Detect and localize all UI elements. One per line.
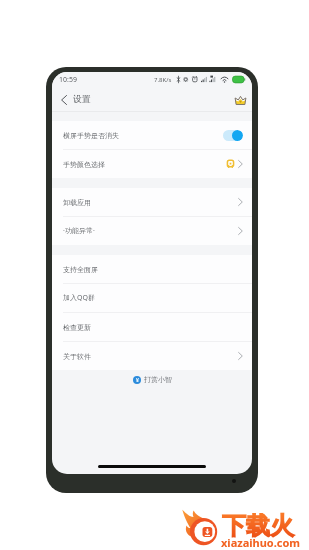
staticText: 7.8K/s (154, 76, 172, 84)
staticText: 支持全面屏 (63, 265, 98, 274)
button[interactable]: 手势颜色选择 (52, 150, 252, 178)
staticText: 设置 (73, 94, 91, 105)
button[interactable]: 关于软件 (52, 342, 252, 370)
staticText: 加入QQ群 (63, 293, 95, 303)
staticText: 手势颜色选择 (63, 160, 105, 169)
button[interactable]: ·功能异常· (52, 217, 252, 245)
button[interactable]: 横屏手势是否消失 (52, 121, 252, 149)
button[interactable]: VIP (232, 92, 248, 108)
staticText: 关于软件 (63, 352, 91, 361)
staticText: 横屏手势是否消失 (63, 131, 119, 140)
staticText: ¥ (136, 377, 139, 384)
button[interactable]: 检查更新 (52, 313, 252, 341)
staticText: 下载火 (222, 511, 294, 541)
staticText: ·功能异常· (63, 226, 95, 236)
button[interactable]: 支持全面屏 (52, 255, 252, 283)
button[interactable]: ¥ (133, 375, 172, 384)
staticText: 卸载应用 (63, 198, 91, 207)
staticText: 打赏小智 (144, 375, 172, 384)
staticText: xiazaihuo.com (221, 535, 301, 550)
button[interactable]: 加入QQ群 (52, 284, 252, 312)
button[interactable]: Toggle landscape gesture (223, 130, 243, 141)
staticText: 10:59 (59, 75, 77, 85)
button[interactable]: Back (57, 92, 71, 108)
button[interactable]: 卸载应用 (52, 188, 252, 216)
staticText: 检查更新 (63, 323, 91, 332)
